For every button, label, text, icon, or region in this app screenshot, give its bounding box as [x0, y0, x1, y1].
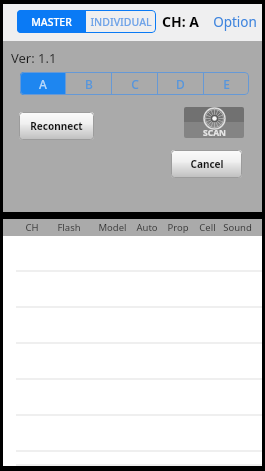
button[interactable]: C [112, 72, 157, 95]
button[interactable]: A [20, 72, 65, 95]
staticText: Cancel [190, 157, 224, 171]
staticText: D [176, 76, 185, 92]
button[interactable] [3, 416, 262, 452]
staticText: Prop [167, 221, 189, 234]
staticText: MASTER [31, 15, 72, 29]
button[interactable]: Scan [184, 107, 244, 138]
button[interactable] [3, 272, 262, 308]
staticText: INDIVIDUAL [90, 15, 152, 29]
staticText: A [39, 76, 47, 92]
staticText: Ver: 1.1 [11, 49, 57, 67]
button[interactable] [3, 452, 262, 466]
staticText: Option [213, 13, 257, 31]
staticText: B [85, 76, 93, 92]
staticText: CH: A [162, 12, 199, 31]
staticText: Model [98, 221, 127, 234]
button[interactable]: Reconnect [19, 112, 94, 140]
button[interactable] [3, 344, 262, 380]
button[interactable]: E [204, 72, 249, 95]
staticText: Reconnect [30, 119, 83, 133]
staticText: Flash [57, 221, 81, 234]
button[interactable]: Option [213, 13, 257, 31]
staticText: CH [25, 221, 39, 234]
staticText: Auto [136, 221, 158, 234]
button[interactable] [3, 380, 262, 416]
button[interactable]: INDIVIDUAL [86, 10, 156, 33]
button[interactable] [3, 236, 262, 272]
button[interactable] [3, 308, 262, 344]
button[interactable]: Cancel [171, 150, 242, 178]
staticText: Sound [223, 221, 252, 234]
button[interactable]: MASTER [17, 10, 86, 33]
staticText: C [131, 76, 139, 92]
staticText: Cell [199, 221, 216, 234]
button[interactable]: B [66, 72, 111, 95]
button[interactable]: D [158, 72, 203, 95]
staticText: SCAN [203, 127, 226, 138]
staticText: E [223, 76, 230, 92]
